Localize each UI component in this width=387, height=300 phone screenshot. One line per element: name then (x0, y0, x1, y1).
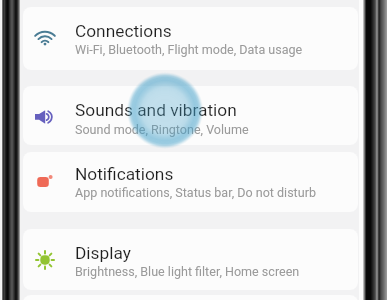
staticText: App notifications, Status bar, Do not di… (75, 185, 316, 200)
staticText: Wi-Fi, Bluetooth, Flight mode, Data usag… (75, 42, 303, 57)
staticText: Sounds and vibration (75, 100, 237, 120)
button[interactable] (23, 86, 358, 145)
staticText: Connections (75, 21, 172, 41)
button[interactable] (23, 152, 358, 212)
other: Display (27, 242, 63, 278)
staticText: Brightness, Blue light filter, Home scre… (75, 264, 300, 279)
button[interactable] (23, 229, 358, 290)
staticText: Display (75, 243, 131, 263)
other: Notifications (27, 163, 63, 199)
other: Sounds and vibration (27, 99, 63, 135)
other: Connections (27, 20, 63, 56)
button[interactable] (23, 7, 358, 70)
staticText: Notifications (75, 164, 174, 184)
staticText: Sound mode, Ringtone, Volume (75, 122, 249, 137)
